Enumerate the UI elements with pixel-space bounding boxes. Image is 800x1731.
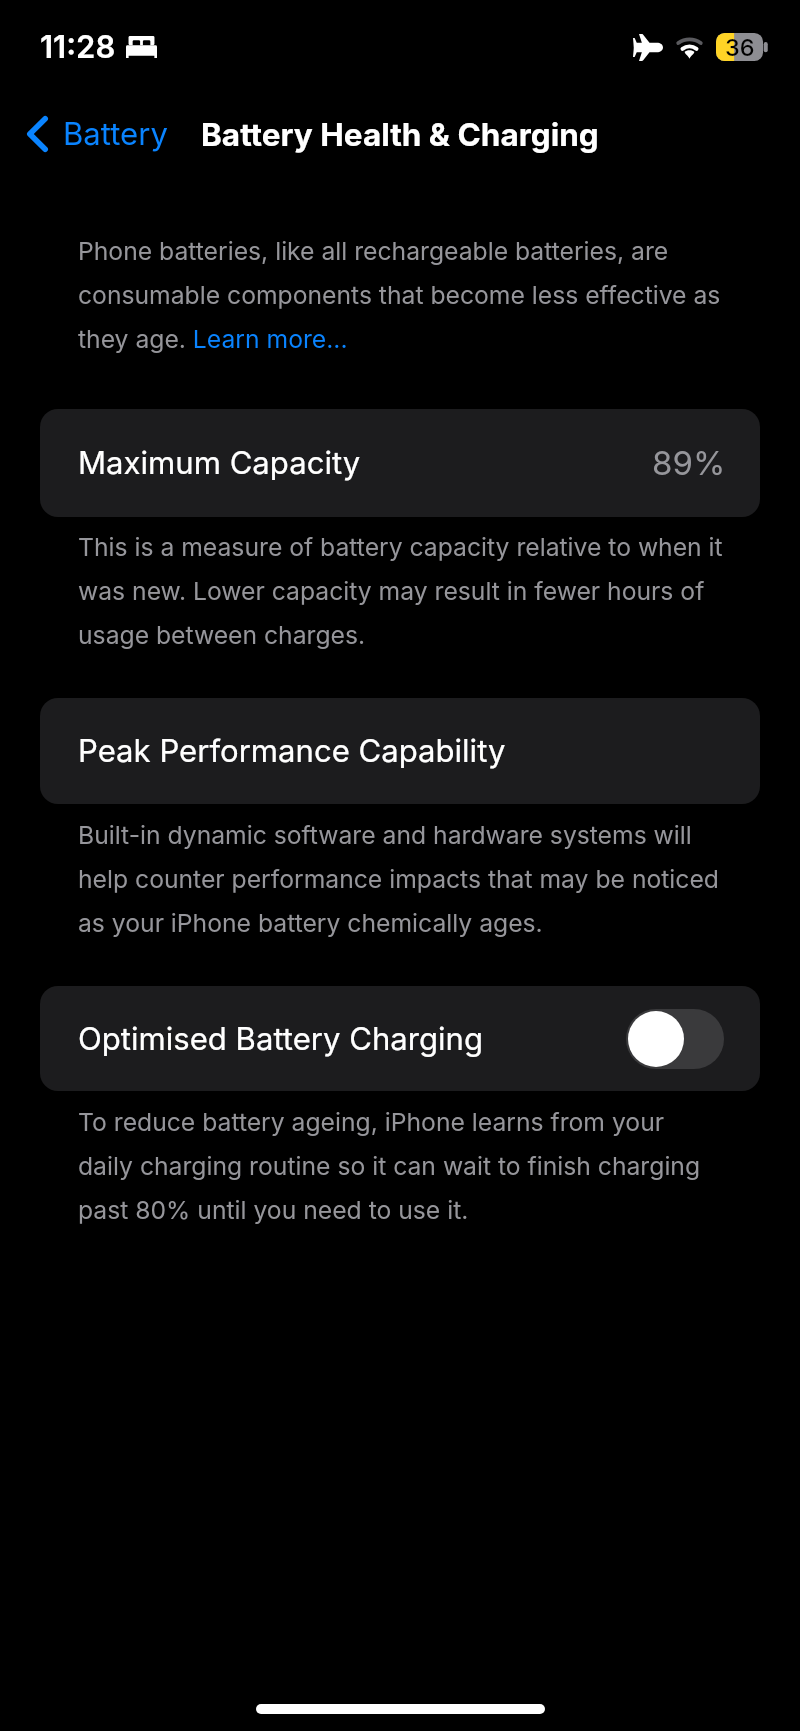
button[interactable]: Maximum Capacity [40,409,760,517]
staticText: This is a measure of battery capacity re… [78,521,723,653]
staticText: 36 [725,33,755,61]
staticText: To reduce battery ageing, iPhone learns … [78,1096,723,1228]
button[interactable]: Peak Performance Capability [40,698,760,804]
other: Aeroplane mode [633,34,663,61]
staticText: Battery [63,115,168,153]
other: Back [27,116,48,152]
staticText: 11:28 [40,28,116,66]
other: Wi-Fi [674,36,705,58]
button[interactable]: Back [0,102,180,160]
button[interactable]: Optimised Battery Charging, off [626,1009,724,1069]
staticText: Built-in dynamic software and hardware s… [78,809,723,941]
other: Sleep Focus [126,36,157,58]
button[interactable]: Optimised Battery Charging [40,986,760,1091]
staticText: Peak Performance Capability [78,732,506,770]
staticText: Phone batteries, like all rechargeable b… [78,225,723,357]
staticText: 89% [652,443,726,483]
staticText: Optimised Battery Charging [78,1020,484,1058]
staticText: Battery Health & Charging [201,115,599,153]
staticText: Maximum Capacity [78,444,361,482]
other: Battery 36 percent [716,33,768,61]
